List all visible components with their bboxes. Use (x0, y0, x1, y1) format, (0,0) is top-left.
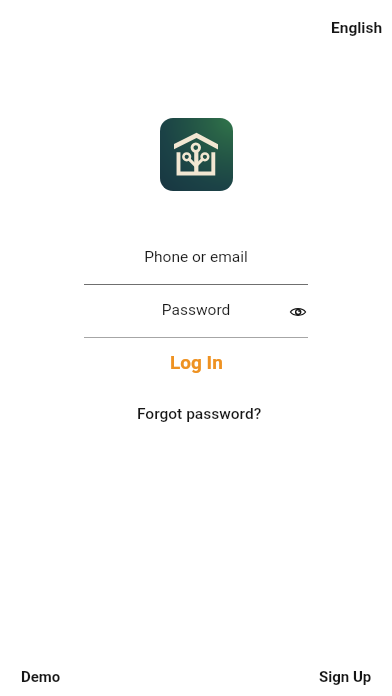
staticText: English (331, 19, 383, 37)
button[interactable]: Password (0, 294, 392, 338)
staticText: Log In (170, 351, 223, 373)
staticText: Password (0, 301, 392, 319)
button[interactable]: English (320, 5, 392, 51)
button[interactable]: Demo (10, 654, 72, 696)
staticText: Phone or email (0, 248, 392, 266)
staticText: Forgot password? (137, 405, 262, 423)
button[interactable]: Phone or email (0, 241, 392, 285)
button[interactable]: Sign Up (308, 654, 383, 696)
staticText: Demo (21, 668, 61, 686)
button[interactable]: Forgot password? (0, 396, 392, 430)
button[interactable]: Log In (0, 340, 392, 377)
button[interactable]: Show password (286, 300, 309, 323)
staticText: Sign Up (319, 668, 372, 686)
